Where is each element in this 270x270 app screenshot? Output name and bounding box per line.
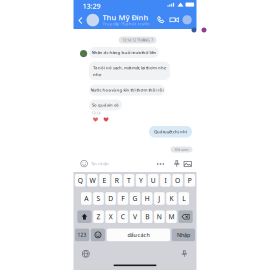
button[interactable]: Emoji [80, 160, 88, 167]
staticText: Ta nói nó sạch, mát mát, lại thơm nhẹ [93, 65, 166, 70]
staticText: L [182, 194, 185, 203]
staticText: J [158, 194, 160, 203]
button[interactable]: L [178, 192, 189, 205]
button[interactable]: T [124, 174, 134, 187]
button[interactable]: Call [156, 15, 165, 24]
button[interactable]: S [93, 192, 104, 205]
staticText: Q [78, 176, 83, 185]
button[interactable]: More options [155, 160, 165, 168]
button[interactable]: W [87, 174, 98, 187]
staticText: I [164, 176, 166, 185]
staticText: Thu Mỹ Đình [102, 12, 148, 22]
staticText: D [108, 194, 113, 203]
button[interactable]: N [154, 210, 165, 223]
staticText: S [96, 194, 100, 203]
button[interactable]: H [142, 192, 152, 205]
button[interactable]: R [111, 174, 122, 187]
button[interactable]: D [105, 192, 116, 205]
staticText: Z [96, 212, 100, 221]
staticText: 13:14 12 THÁNG 7 [122, 37, 153, 43]
button[interactable]: 123 [75, 229, 89, 241]
staticText: 123 [78, 232, 87, 238]
staticText: O [175, 176, 180, 185]
button[interactable]: Backspace [178, 210, 193, 223]
button[interactable]: Q [75, 174, 85, 187]
button[interactable]: C [117, 210, 128, 223]
button[interactable]: Nhập [172, 229, 195, 241]
button[interactable]: M [166, 210, 177, 223]
button[interactable]: F [117, 192, 128, 205]
button[interactable]: O [172, 174, 183, 187]
staticText: 13:14 [91, 110, 100, 115]
button[interactable]: dấu cách [107, 229, 170, 241]
staticText: Quá tuyệt chị nhỉ [154, 129, 187, 134]
staticText: A [84, 194, 88, 203]
staticText: P [188, 176, 192, 185]
staticText: Y [139, 176, 143, 185]
staticText: M [168, 212, 174, 221]
staticText: V [133, 212, 137, 221]
staticText: R [115, 176, 119, 185]
button[interactable]: Dictation [180, 250, 188, 258]
button[interactable]: Switch keyboard [82, 250, 90, 258]
staticText: Nhận dc hàng buổi trưa thứ liền [91, 50, 156, 55]
staticText: N [157, 212, 162, 221]
button[interactable]: X [105, 210, 116, 223]
button[interactable]: G [130, 192, 140, 205]
button[interactable]: I [160, 174, 171, 187]
staticText: U [151, 176, 156, 185]
button[interactable]: Thu Mỹ Đình [86, 11, 152, 28]
button[interactable]: K [166, 192, 177, 205]
button[interactable]: A [81, 192, 92, 205]
button[interactable]: Photos [183, 160, 192, 168]
staticText: Đã xem [175, 147, 188, 152]
button[interactable]: Y [136, 174, 146, 187]
button[interactable]: Shift [77, 210, 92, 223]
staticText: C [121, 212, 125, 221]
button[interactable]: Emoji keyboard [91, 229, 105, 241]
staticText: Nhập [177, 231, 190, 239]
staticText: T [127, 176, 131, 185]
button[interactable]: Profile [182, 15, 192, 24]
button[interactable]: Back [75, 12, 86, 29]
staticText: W [89, 176, 95, 185]
button[interactable]: Voice message [173, 160, 181, 168]
staticText: E [103, 176, 107, 185]
staticText: 13:29 [82, 1, 100, 11]
staticText: So quá xin sò [92, 102, 119, 108]
staticText: Nước hoa vùng kín thì thơm thôi rồi [90, 87, 163, 93]
button[interactable]: U [148, 174, 158, 187]
staticText: F [121, 194, 124, 203]
staticText: G [132, 194, 137, 203]
staticText: X [109, 212, 113, 221]
button[interactable]: P [184, 174, 195, 187]
staticText: dấu cách [127, 231, 149, 239]
staticText: Truy cập 15 phút trước [102, 21, 149, 26]
button[interactable]: E [99, 174, 110, 187]
staticText: nhẹ [93, 71, 101, 77]
staticText: Tin nhắn [91, 161, 109, 166]
button[interactable]: V [130, 210, 140, 223]
staticText: H [145, 194, 150, 203]
button[interactable]: B [142, 210, 152, 223]
button[interactable]: J [154, 192, 165, 205]
staticText: B [145, 212, 149, 221]
staticText: K [169, 194, 173, 203]
button[interactable]: Z [93, 210, 104, 223]
button[interactable]: Video call [169, 15, 179, 24]
